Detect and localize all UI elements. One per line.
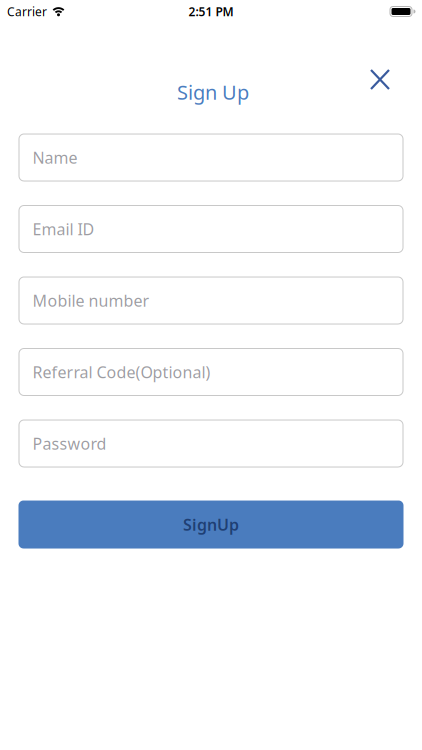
staticText: Email ID [32, 218, 94, 240]
staticText: Password [32, 433, 106, 454]
staticText: Sign Up [177, 79, 249, 105]
staticText: Name [32, 147, 77, 168]
staticText: SignUp [183, 514, 239, 535]
button[interactable]: Email ID [18, 205, 403, 253]
button[interactable]: SignUp [18, 500, 403, 548]
staticText: Carrier [7, 3, 47, 19]
button[interactable]: Close [361, 60, 399, 99]
staticText: 2:51 PM [188, 3, 233, 19]
button[interactable]: Referral Code(Optional) [18, 348, 403, 396]
staticText: Mobile number [32, 290, 149, 311]
button[interactable]: Name [18, 133, 403, 181]
button[interactable]: Password [18, 419, 403, 467]
button[interactable]: Mobile number [18, 276, 403, 324]
staticText: Referral Code(Optional) [32, 361, 210, 383]
